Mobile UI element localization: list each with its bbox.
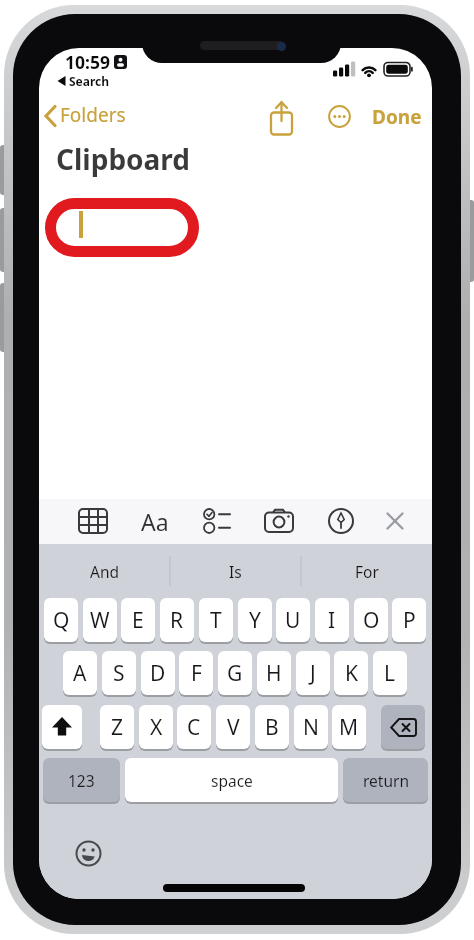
- button[interactable]: F: [179, 651, 213, 697]
- button[interactable]: space: [125, 758, 338, 804]
- staticText: Done: [372, 104, 422, 128]
- button[interactable]: For: [301, 547, 432, 595]
- staticText: F: [191, 659, 202, 688]
- staticText: J: [310, 659, 316, 688]
- button[interactable]: Folders: [60, 102, 132, 128]
- staticText: Clipboard: [56, 140, 191, 178]
- button[interactable]: And: [39, 547, 170, 595]
- staticText: Aa: [141, 506, 169, 537]
- button[interactable]: N: [294, 705, 328, 751]
- staticText: N: [303, 713, 319, 742]
- staticText: U: [285, 606, 301, 635]
- button[interactable]: Q: [44, 598, 78, 644]
- staticText: Search: [69, 73, 110, 88]
- staticText: K: [345, 659, 358, 688]
- staticText: space: [211, 770, 253, 791]
- staticText: D: [150, 659, 166, 688]
- button[interactable]: [264, 509, 294, 533]
- button[interactable]: [203, 508, 231, 534]
- button[interactable]: Z: [100, 705, 134, 751]
- button[interactable]: O: [354, 598, 388, 644]
- button[interactable]: J: [296, 651, 330, 697]
- button[interactable]: [44, 105, 57, 127]
- button[interactable]: [328, 105, 351, 128]
- button[interactable]: return: [343, 758, 428, 804]
- button[interactable]: [78, 508, 108, 534]
- button[interactable]: Done: [370, 104, 424, 128]
- button[interactable]: V: [216, 705, 250, 751]
- button[interactable]: H: [257, 651, 291, 697]
- staticText: P: [403, 606, 416, 635]
- button[interactable]: [268, 100, 295, 137]
- button[interactable]: P: [392, 598, 426, 644]
- button[interactable]: M: [332, 705, 366, 751]
- button[interactable]: D: [141, 651, 175, 697]
- staticText: I: [328, 606, 336, 635]
- button[interactable]: [328, 508, 354, 534]
- button[interactable]: L: [373, 651, 407, 697]
- button[interactable]: 123: [43, 758, 120, 804]
- staticText: 10:59: [65, 50, 110, 72]
- button[interactable]: B: [255, 705, 289, 751]
- staticText: 123: [68, 770, 95, 791]
- button[interactable]: [75, 840, 102, 867]
- button[interactable]: [42, 705, 82, 751]
- staticText: O: [363, 606, 380, 635]
- staticText: W: [90, 606, 110, 635]
- staticText: L: [384, 659, 396, 688]
- staticText: S: [113, 659, 125, 688]
- staticText: E: [132, 606, 144, 635]
- staticText: Q: [53, 606, 70, 635]
- staticText: Z: [111, 713, 124, 742]
- staticText: Y: [249, 606, 261, 635]
- staticText: And: [90, 561, 120, 582]
- button[interactable]: K: [334, 651, 368, 697]
- staticText: B: [265, 713, 279, 742]
- button[interactable]: W: [83, 598, 117, 644]
- button[interactable]: Y: [238, 598, 272, 644]
- button[interactable]: E: [121, 598, 155, 644]
- button[interactable]: Aa: [134, 506, 176, 537]
- button[interactable]: U: [276, 598, 310, 644]
- staticText: G: [227, 659, 243, 688]
- staticText: V: [227, 713, 240, 742]
- staticText: Is: [229, 561, 242, 582]
- button[interactable]: C: [177, 705, 211, 751]
- staticText: For: [355, 561, 379, 582]
- button[interactable]: [381, 705, 425, 751]
- button[interactable]: [386, 512, 404, 530]
- button[interactable]: Is: [170, 547, 301, 595]
- button[interactable]: I: [315, 598, 349, 644]
- staticText: return: [363, 770, 409, 791]
- button[interactable]: G: [218, 651, 252, 697]
- staticText: T: [210, 606, 222, 635]
- staticText: A: [73, 659, 87, 688]
- button[interactable]: A: [63, 651, 97, 697]
- staticText: Folders: [60, 102, 126, 128]
- staticText: H: [266, 659, 282, 688]
- staticText: C: [187, 713, 201, 742]
- staticText: X: [150, 713, 163, 742]
- button[interactable]: S: [102, 651, 136, 697]
- staticText: R: [170, 606, 184, 635]
- button[interactable]: R: [160, 598, 194, 644]
- button[interactable]: X: [139, 705, 173, 751]
- staticText: M: [339, 713, 359, 742]
- button[interactable]: T: [199, 598, 233, 644]
